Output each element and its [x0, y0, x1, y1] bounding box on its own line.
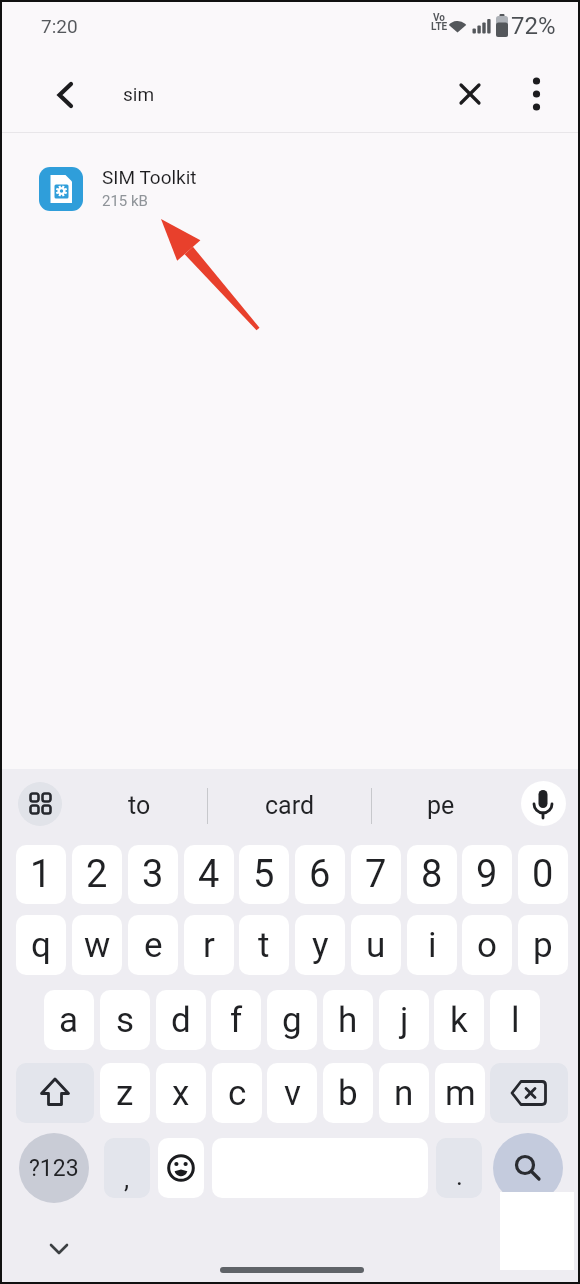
button[interactable]: 6 [295, 845, 345, 904]
button[interactable]: 7 [351, 845, 401, 904]
staticText: LTE [431, 21, 448, 33]
staticText: p [533, 925, 553, 966]
staticText: w [84, 925, 111, 966]
staticText: 4 [198, 852, 220, 897]
staticText: f [230, 1000, 243, 1041]
button[interactable]: 1 [16, 845, 66, 904]
staticText: 6 [309, 852, 331, 897]
button[interactable]: f [211, 990, 261, 1050]
staticText: j [400, 1000, 409, 1041]
button[interactable]: i [407, 915, 457, 975]
button[interactable]: y [295, 915, 345, 975]
staticText: h [338, 1000, 358, 1041]
button[interactable] [158, 1138, 204, 1198]
button[interactable] [521, 781, 566, 826]
staticText: . [456, 1161, 463, 1191]
button[interactable]: q [16, 915, 66, 975]
button[interactable]: w [72, 915, 122, 975]
staticText: b [338, 1073, 358, 1114]
staticText: u [366, 925, 386, 966]
staticText: 0 [532, 852, 554, 897]
button[interactable]: 2 [72, 845, 122, 904]
button[interactable] [16, 1063, 94, 1123]
button[interactable]: s [100, 990, 150, 1050]
staticText: g [282, 1000, 302, 1041]
button[interactable]: h [323, 990, 373, 1050]
button[interactable]: o [462, 915, 512, 975]
button[interactable]: a [44, 990, 94, 1050]
staticText: 5 [253, 852, 275, 897]
staticText: a [59, 1000, 79, 1041]
button[interactable]: 5 [239, 845, 289, 904]
staticText: z [116, 1073, 134, 1114]
button[interactable]: p [518, 915, 568, 975]
button[interactable]: r [184, 915, 234, 975]
button[interactable]: e [128, 915, 178, 975]
button[interactable]: 0 [518, 845, 568, 904]
staticText: t [258, 925, 270, 966]
staticText: i [428, 925, 437, 966]
button[interactable]: card [211, 777, 369, 833]
button[interactable]: 9 [462, 845, 512, 904]
button[interactable]: t [239, 915, 289, 975]
staticText: , [124, 1164, 130, 1194]
button[interactable]: d [156, 990, 206, 1050]
staticText: 8 [421, 852, 443, 897]
staticText: l [511, 1000, 520, 1041]
button[interactable]: b [323, 1063, 373, 1123]
button[interactable] [42, 72, 88, 118]
staticText: r [203, 925, 215, 966]
staticText: 215 kB [102, 192, 148, 210]
button[interactable]: 8 [407, 845, 457, 904]
staticText: 9 [476, 852, 498, 897]
button[interactable]: j [379, 990, 429, 1050]
staticText: 72% [511, 12, 556, 40]
button[interactable]: . [436, 1138, 482, 1198]
staticText: x [172, 1073, 190, 1114]
staticText: Vo [433, 12, 445, 24]
button[interactable]: c [212, 1063, 262, 1123]
button[interactable]: v [267, 1063, 317, 1123]
staticText: c [228, 1073, 247, 1114]
button[interactable]: z [100, 1063, 150, 1123]
staticText: o [477, 925, 497, 966]
staticText: e [144, 925, 163, 966]
button[interactable]: l [490, 990, 540, 1050]
staticText: y [312, 925, 329, 966]
button[interactable]: , [104, 1138, 150, 1198]
button[interactable]: 3 [128, 845, 178, 904]
button[interactable]: pe [375, 777, 507, 833]
staticText: n [394, 1073, 414, 1114]
staticText: card [265, 791, 315, 820]
button[interactable] [490, 1063, 568, 1123]
button[interactable] [447, 71, 493, 117]
button[interactable]: to [73, 777, 205, 833]
button[interactable]: u [351, 915, 401, 975]
staticText: 2 [86, 852, 108, 897]
staticText: sim [123, 83, 155, 105]
staticText: 1 [30, 852, 52, 897]
staticText: 7:20 [41, 15, 78, 37]
button[interactable]: g [267, 990, 317, 1050]
staticText: d [171, 1000, 191, 1041]
button[interactable] [514, 71, 560, 117]
button[interactable]: ?123 [19, 1133, 89, 1203]
staticText: m [445, 1073, 476, 1114]
button[interactable] [493, 1133, 563, 1203]
staticText: 3 [142, 852, 164, 897]
staticText: pe [427, 791, 455, 820]
button[interactable] [18, 782, 62, 826]
button[interactable]: n [379, 1063, 429, 1123]
button[interactable] [2, 147, 578, 231]
staticText: q [31, 925, 51, 966]
button[interactable]: x [156, 1063, 206, 1123]
button[interactable]: 4 [184, 845, 234, 904]
staticText: k [450, 1000, 468, 1041]
staticText: to [128, 791, 151, 820]
staticText: v [284, 1073, 301, 1114]
staticText: ?123 [29, 1155, 79, 1182]
button[interactable]: m [435, 1063, 485, 1123]
staticText: SIM Toolkit [102, 166, 197, 188]
button[interactable]: k [434, 990, 484, 1050]
